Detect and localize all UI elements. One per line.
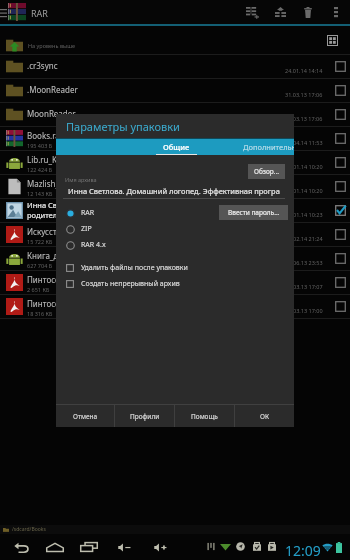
- staticText: Ввести пароль...: [228, 208, 280, 217]
- staticText: Искусств: [27, 226, 62, 237]
- button[interactable]: Обзор...: [248, 164, 285, 179]
- staticText: Инна Светлова. Домашний логопед. Эффекти…: [68, 186, 280, 196]
- staticText: 98 293 КБ: [27, 220, 53, 223]
- staticText: 04.14 11:53: [293, 139, 323, 146]
- button[interactable]: Пинтосев: [0, 271, 350, 294]
- staticText: 12:09: [285, 541, 321, 560]
- button[interactable]: Select Books.rar: [332, 130, 349, 147]
- button[interactable]: Select .MoonReader: [332, 82, 349, 99]
- button[interactable]: .MoonReader: [0, 79, 350, 102]
- button[interactable]: Отмена: [56, 405, 114, 427]
- button[interactable]: Select Пинтосев: [332, 274, 349, 291]
- button[interactable]: Volume down: [113, 534, 135, 560]
- button[interactable]: .cr3sync: [0, 55, 350, 78]
- staticText: RAR: [81, 208, 95, 218]
- button[interactable]: Профили: [115, 405, 174, 427]
- staticText: Удалить файлы после упаковки: [81, 263, 188, 273]
- button[interactable]: Lib.ru_Kn: [0, 151, 350, 174]
- button[interactable]: Дополнительно: [224, 139, 294, 155]
- button[interactable]: Пинтосев: [0, 295, 350, 318]
- button[interactable]: Помощь: [175, 405, 234, 427]
- staticText: Lib.ru_Kn: [27, 154, 63, 165]
- staticText: Books.rar: [27, 130, 64, 141]
- staticText: ОК: [260, 412, 270, 421]
- button[interactable]: Книга_дл: [0, 247, 350, 270]
- button[interactable]: Select .cr3sync: [332, 58, 349, 75]
- button[interactable]: Extract: [268, 0, 292, 24]
- button[interactable]: Select Инна Све: [332, 202, 349, 219]
- button[interactable]: More options: [326, 0, 346, 24]
- staticText: 122 424 Б: [27, 166, 53, 173]
- staticText: 18 316 КБ: [27, 310, 53, 317]
- button[interactable]: Ввести пароль...: [219, 205, 288, 220]
- staticText: 12 143 КБ: [27, 190, 53, 197]
- button[interactable]: Home: [44, 534, 66, 560]
- staticText: 195 403 Б: [27, 142, 53, 149]
- staticText: RAR 4.x: [81, 240, 106, 250]
- staticText: .MoonReader: [27, 84, 78, 95]
- staticText: 15 722 КБ: [27, 238, 53, 245]
- staticText: родителе: [27, 210, 62, 220]
- button[interactable]: Создать непрерывный архив: [56, 276, 294, 292]
- button[interactable]: Общие: [128, 139, 224, 155]
- staticText: Книга_дл: [27, 250, 64, 261]
- button[interactable]: Volume up: [149, 534, 171, 560]
- button[interactable]: MoonReader: [0, 103, 350, 126]
- button[interactable]: На уровень выше: [0, 26, 350, 54]
- button[interactable]: Select Lib.ru_Kn: [332, 154, 349, 171]
- staticText: Mazlish_U: [27, 178, 65, 189]
- button[interactable]: ZIP: [56, 221, 294, 237]
- staticText: Создать непрерывный архив: [81, 279, 180, 289]
- button[interactable]: Удалить файлы после упаковки: [56, 260, 294, 276]
- button[interactable]: ОК: [235, 405, 294, 427]
- staticText: 06.13 23:53: [293, 259, 323, 266]
- button[interactable]: Mazlish_U: [0, 175, 350, 198]
- staticText: 01.14 10:20: [293, 187, 323, 194]
- staticText: /sdcard/Books: [12, 526, 46, 533]
- staticText: 01.14 10:20: [293, 163, 323, 170]
- staticText: Инна Све: [27, 200, 62, 210]
- staticText: Общие: [163, 142, 190, 152]
- staticText: Обзор...: [254, 167, 280, 176]
- staticText: Помощь: [191, 412, 218, 421]
- staticText: На уровень выше: [28, 42, 76, 49]
- staticText: .cr3sync: [27, 60, 58, 71]
- staticText: Имя архива: [65, 176, 97, 183]
- button[interactable]: Recents: [78, 534, 100, 560]
- button[interactable]: Select MoonReader: [332, 106, 349, 123]
- staticText: Пинтосев: [27, 298, 64, 309]
- staticText: 627 704 Б: [27, 262, 53, 269]
- staticText: 03.03.13 17:06: [285, 115, 323, 122]
- button[interactable]: Искусств: [0, 223, 350, 246]
- button[interactable]: RAR: [56, 205, 294, 221]
- button[interactable]: Инна Све: [0, 199, 350, 222]
- button[interactable]: Select Mazlish_U: [332, 178, 349, 195]
- staticText: Параметры упаковки: [66, 119, 180, 134]
- staticText: Пинтосев: [27, 274, 64, 285]
- button[interactable]: Back: [10, 534, 32, 560]
- staticText: 03.13 17:00: [293, 307, 323, 314]
- button[interactable]: RAR 4.x: [56, 237, 294, 253]
- staticText: ZIP: [81, 224, 92, 234]
- button[interactable]: Books.rar: [0, 127, 350, 150]
- button[interactable]: Select Книга_дл: [332, 250, 349, 267]
- staticText: MoonReader: [27, 108, 76, 119]
- staticText: Дополнительно: [243, 142, 294, 152]
- button[interactable]: Grid view: [320, 26, 344, 54]
- staticText: 31.03.13 17:06: [285, 91, 323, 98]
- staticText: 24.01.14 14:14: [285, 67, 323, 74]
- staticText: 03.13 17:07: [293, 283, 323, 290]
- staticText: RAR: [31, 7, 48, 19]
- staticText: 01.14 10:23: [293, 211, 323, 218]
- button[interactable]: Delete: [296, 0, 320, 24]
- staticText: 2 651 КБ: [27, 286, 50, 293]
- staticText: Профили: [130, 412, 160, 421]
- staticText: 02.14 21:24: [293, 235, 323, 242]
- button[interactable]: Select Искусств: [332, 226, 349, 243]
- staticText: Отмена: [73, 412, 98, 421]
- button[interactable]: Select Пинтосев: [332, 298, 349, 315]
- button[interactable]: Add to archive: [239, 0, 265, 24]
